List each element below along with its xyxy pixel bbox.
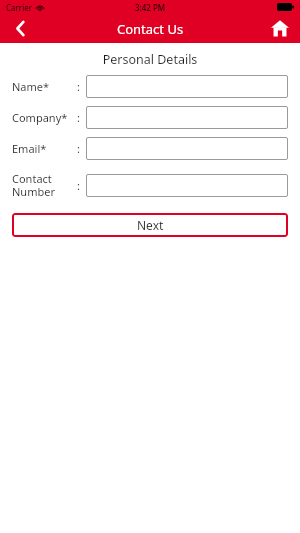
staticText: Next xyxy=(137,217,164,233)
staticText: Name* xyxy=(12,79,50,94)
button[interactable]: Contact Number xyxy=(0,168,300,202)
button[interactable]: Home xyxy=(260,14,300,43)
staticText: : xyxy=(77,110,80,125)
staticText: : xyxy=(77,178,80,193)
button[interactable]: Email* xyxy=(0,137,300,160)
button[interactable]: Back xyxy=(0,14,40,43)
staticText: Carrier xyxy=(6,2,33,13)
button[interactable]: Next xyxy=(12,213,288,237)
staticText: : xyxy=(77,141,80,156)
staticText: Contact Us xyxy=(117,20,184,38)
staticText: 3:42 PM xyxy=(135,2,166,13)
staticText: Personal Details xyxy=(0,51,300,68)
staticText: Company* xyxy=(12,110,68,125)
staticText: Email* xyxy=(12,141,47,156)
button[interactable]: Company* xyxy=(0,106,300,129)
staticText: : xyxy=(77,79,80,94)
button[interactable]: Name* xyxy=(0,75,300,98)
staticText: Contact Number xyxy=(12,171,55,199)
